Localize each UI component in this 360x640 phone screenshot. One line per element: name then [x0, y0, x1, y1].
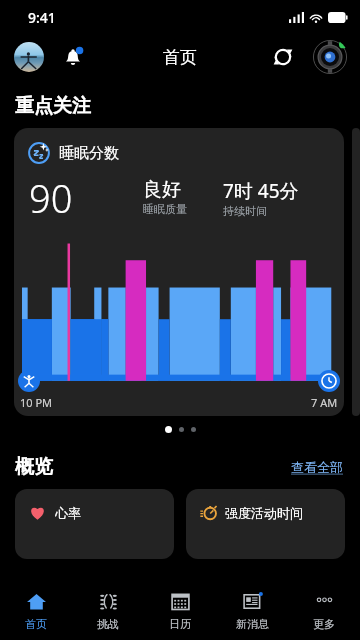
button[interactable]: Watch device	[312, 39, 348, 75]
staticText: 查看全部	[291, 459, 343, 475]
staticText: 重点关注	[15, 94, 91, 118]
staticText: 持续时间	[223, 204, 267, 218]
button[interactable]: 挑战	[72, 582, 144, 640]
button[interactable]: 首页	[0, 582, 72, 640]
staticText: 日历	[169, 617, 191, 631]
staticText: 良好	[143, 178, 181, 202]
staticText: 强度活动时间	[225, 505, 303, 521]
staticText: 睡眠分数	[59, 144, 119, 163]
staticText: 9:41	[28, 8, 56, 27]
staticText: 睡眠质量	[143, 202, 187, 216]
staticText: 心率	[55, 505, 81, 521]
staticText: 首页	[25, 617, 47, 631]
staticText: 概览	[15, 455, 53, 479]
staticText: 挑战	[97, 617, 119, 631]
button[interactable]: 心率	[15, 489, 174, 559]
button[interactable]: Notifications	[58, 42, 88, 72]
staticText: 更多	[313, 617, 335, 631]
staticText: 首页	[163, 47, 197, 68]
button[interactable]: 睡眠分数	[14, 128, 344, 416]
button[interactable]: 日历	[144, 582, 216, 640]
button[interactable]: 查看全部	[289, 457, 345, 477]
staticText: 90	[29, 172, 73, 224]
staticText: 7时 45分	[223, 178, 299, 204]
button[interactable]: Profile	[14, 42, 44, 72]
staticText: 10 PM	[20, 395, 53, 410]
button[interactable]: 强度活动时间	[186, 489, 345, 559]
button[interactable]: 新消息	[216, 582, 288, 640]
staticText: 新消息	[236, 617, 269, 631]
button[interactable]: 更多	[288, 582, 360, 640]
staticText: 7 AM	[311, 395, 338, 410]
button[interactable]: Sync	[268, 42, 298, 72]
